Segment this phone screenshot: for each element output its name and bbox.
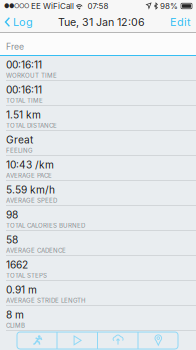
staticText: Great bbox=[6, 134, 33, 146]
staticText: 8 m bbox=[6, 309, 24, 321]
staticText: AVERAGE SPEED bbox=[6, 197, 57, 204]
staticText: Edit bbox=[170, 15, 191, 29]
staticText: ●●○○○ bbox=[4, 2, 29, 10]
staticText: Log bbox=[13, 15, 33, 29]
staticText: 10:43 /km bbox=[6, 159, 54, 171]
staticText: 98% bbox=[160, 1, 178, 11]
staticText: Free bbox=[6, 41, 24, 52]
staticText: WORKOUT TIME bbox=[6, 72, 57, 79]
button[interactable]: Log bbox=[0, 12, 33, 32]
staticText: TOTAL TIME bbox=[6, 97, 43, 104]
staticText: 07:58 bbox=[87, 1, 108, 11]
staticText: FEELING bbox=[6, 147, 33, 154]
staticText: 00:16:11 bbox=[6, 84, 42, 96]
button[interactable]: Upload bbox=[98, 332, 137, 349]
button[interactable]: Map bbox=[138, 332, 178, 349]
staticText: 00:16:11 bbox=[6, 59, 42, 71]
staticText: CLIMB bbox=[6, 322, 25, 329]
staticText: 0.91 m bbox=[6, 284, 37, 296]
staticText: 1662 bbox=[6, 259, 28, 271]
staticText: 98 bbox=[6, 209, 18, 221]
staticText: TOTAL DISTANCE bbox=[6, 122, 57, 129]
staticText: AVERAGE PACE bbox=[6, 172, 52, 179]
staticText: EE WiFiCall bbox=[29, 1, 74, 11]
button[interactable]: Edit bbox=[170, 12, 196, 32]
staticText: TOTAL CALORIES BURNED bbox=[6, 222, 85, 229]
staticText: 5.59 km/h bbox=[6, 184, 55, 196]
button[interactable]: Start bbox=[57, 332, 97, 349]
staticText: TOTAL STEPS bbox=[6, 272, 47, 279]
staticText: 1.51 km bbox=[6, 109, 41, 121]
staticText: Tue, 31 Jan 12:06 bbox=[58, 15, 145, 28]
button[interactable]: Workout type bbox=[17, 332, 56, 349]
staticText: AVERAGE STRIDE LENGTH bbox=[6, 297, 86, 304]
staticText: 58 bbox=[6, 234, 18, 246]
staticText: AVERAGE CADENCE bbox=[6, 247, 66, 254]
